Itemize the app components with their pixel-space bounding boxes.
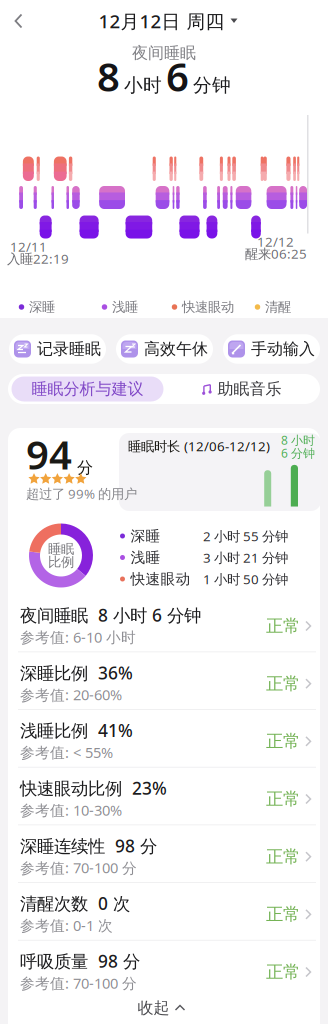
staticText: 94 分 [26, 427, 93, 480]
button[interactable]: 手动输入 [223, 334, 320, 364]
staticText: 浅睡 [112, 299, 138, 315]
button[interactable]: 收起 [121, 995, 201, 1021]
button[interactable]: 记录睡眠 [9, 334, 106, 364]
staticText: 正常 [266, 788, 300, 810]
staticText: 参考值: < 55% [20, 743, 113, 762]
staticText: 深睡 [29, 299, 55, 315]
staticText: 12/12 [257, 233, 294, 250]
staticText: 参考值: 70-100 分 [20, 858, 137, 877]
staticText: 清醒次数 0 次 [20, 892, 130, 915]
staticText: 正常 [266, 673, 300, 694]
staticText: 正常 [266, 961, 300, 983]
staticText: 深睡 [130, 527, 160, 545]
staticText: 12/11 [10, 238, 47, 255]
staticText: 手动输入 [251, 339, 315, 359]
staticText: 12月12日 周四 [98, 9, 224, 33]
staticText: 1 小时 50 分钟 [203, 570, 288, 588]
button[interactable]: 夜间睡眠 8 小时 6 分钟 [20, 604, 312, 652]
staticText: 2 小时 55 分钟 [203, 527, 288, 545]
staticText: 3 小时 21 分钟 [203, 549, 288, 566]
staticText: 醒来06:25 [245, 245, 307, 262]
staticText: 浅睡比例 41% [20, 719, 133, 742]
button[interactable]: 睡眠分析与建议 [11, 376, 163, 401]
staticText: 入睡22:19 [7, 250, 69, 267]
button[interactable]: Back [6, 5, 32, 36]
staticText: 小时 [124, 74, 162, 97]
staticText: 参考值: 20-60% [20, 685, 122, 704]
staticText: 正常 [266, 731, 300, 752]
button[interactable]: 深睡比例 36% [20, 662, 312, 710]
staticText: 参考值: 6-10 小时 [20, 627, 136, 647]
staticText: 快速眼动 [130, 570, 190, 588]
staticText: 睡眠分析与建议 [31, 379, 143, 399]
staticText: 正常 [266, 615, 300, 637]
staticText: 收起 [137, 998, 169, 1018]
button[interactable]: 浅睡比例 41% [20, 719, 312, 767]
staticText: 6 [166, 49, 189, 102]
button[interactable]: 深睡连续性 98 分 [20, 835, 312, 883]
staticText: 深睡比例 36% [20, 661, 133, 684]
button[interactable]: 12月12日 周四 [98, 9, 237, 33]
staticText: 分钟 [193, 74, 231, 97]
staticText: 记录睡眠 [37, 339, 101, 359]
staticText: 夜间睡眠 [132, 43, 196, 63]
button[interactable]: 快速眼动比例 23% [20, 777, 312, 825]
staticText: 深睡连续性 98 分 [20, 834, 157, 857]
staticText: 清醒 [265, 299, 291, 315]
staticText: 参考值: 0-1 次 [20, 916, 113, 935]
staticText: 8 [97, 49, 120, 102]
staticText: 睡眠时长 (12/06-12/12) [128, 437, 270, 455]
staticText: 比例 [48, 554, 74, 570]
staticText: 8 小时 [281, 432, 315, 448]
staticText: 正常 [266, 904, 300, 925]
button[interactable]: 高效午休 [116, 334, 213, 364]
staticText: 6 分钟 [281, 445, 315, 461]
button[interactable]: 清醒次数 0 次 [20, 892, 312, 940]
staticText: 睡眠 [48, 541, 74, 557]
staticText: 超过了 99% 的用户 [26, 485, 137, 502]
staticText: 夜间睡眠 8 小时 6 分钟 [20, 603, 201, 626]
staticText: 参考值: 70-100 分 [20, 973, 137, 993]
staticText: 呼吸质量 98 分 [20, 949, 140, 972]
staticText: 参考值: 10-30% [20, 800, 122, 820]
button[interactable]: 呼吸质量 98 分 [20, 950, 312, 998]
staticText: 助眠音乐 [217, 379, 281, 399]
staticText: 快速眼动 [182, 299, 234, 315]
staticText: 浅睡 [130, 548, 160, 566]
staticText: 快速眼动比例 23% [20, 776, 167, 799]
button[interactable]: 助眠音乐 [171, 375, 311, 403]
staticText: 正常 [266, 846, 300, 867]
staticText: 高效午休 [144, 339, 208, 359]
